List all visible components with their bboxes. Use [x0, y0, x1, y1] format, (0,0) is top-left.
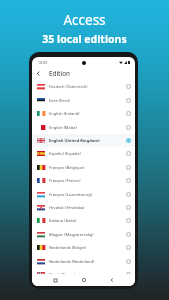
button[interactable]: Eesti (Eesti)	[32, 93, 135, 107]
button[interactable]: Hrvatski (Hrvatska)	[32, 201, 135, 214]
button[interactable]: Norsk (Norge)	[32, 268, 135, 281]
button[interactable]: Back	[106, 274, 118, 286]
button[interactable]: Home	[78, 274, 90, 286]
button[interactable]: Deutsch (Österreich)	[32, 80, 135, 93]
staticText: English (United Kingdom)	[49, 138, 100, 143]
staticText: Español (España)	[49, 151, 81, 156]
button[interactable]: Français (Luxembourg)	[32, 187, 135, 201]
staticText: Français (France)	[49, 178, 81, 183]
staticText: 10:00	[38, 60, 48, 65]
staticText: Français (Belgique)	[49, 165, 85, 170]
staticText: Hrvatski (Hrvatska)	[49, 205, 85, 210]
button[interactable]: Magyar (Magyarország)	[32, 227, 135, 241]
staticText: Italiano (Italia)	[49, 218, 77, 223]
staticText: Magyar (Magyarország)	[49, 232, 94, 237]
button[interactable]: English (United Kingdom)	[32, 134, 135, 147]
button[interactable]: Français (France)	[32, 174, 135, 187]
staticText: Deutsch (Österreich)	[49, 84, 88, 89]
staticText: Français (Luxembourg)	[49, 192, 92, 197]
staticText: Nederlands (Nederland)	[49, 259, 95, 264]
button[interactable]: Recents	[49, 274, 61, 286]
button[interactable]: Nederlands (België)	[32, 241, 135, 254]
staticText: English (Malta)	[49, 125, 77, 130]
button[interactable]: Español (España)	[32, 147, 135, 160]
button[interactable]: Nederlands (Nederland)	[32, 254, 135, 268]
staticText: Eesti (Eesti)	[49, 98, 71, 103]
staticText: Norsk (Norge)	[49, 272, 76, 277]
button[interactable]: Français (Belgique)	[32, 160, 135, 174]
staticText: Edition	[49, 69, 71, 78]
staticText: 35 local editions	[42, 32, 127, 46]
button[interactable]: English (Ireland)	[32, 107, 135, 120]
staticText: Access	[63, 11, 106, 29]
button[interactable]: Italiano (Italia)	[32, 214, 135, 227]
staticText: English (Ireland)	[49, 111, 80, 116]
button[interactable]: Back	[32, 67, 44, 80]
staticText: Nederlands (België)	[49, 245, 86, 250]
button[interactable]: English (Malta)	[32, 120, 135, 134]
